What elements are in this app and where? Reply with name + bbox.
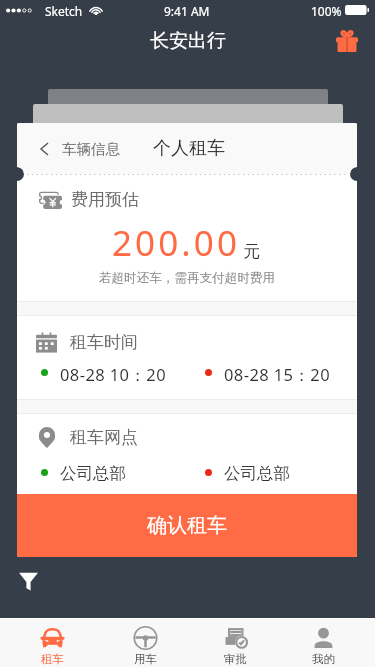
staticText: 9:41 AM: [164, 3, 210, 19]
staticText: 若超时还车，需再支付超时费用: [17, 270, 357, 286]
staticText: 200.00: [112, 219, 241, 267]
button[interactable]: 租车: [7, 619, 98, 667]
staticText: 租车网点: [70, 427, 138, 448]
staticText: 08-28 15：20: [224, 363, 331, 381]
staticText: 公司总部: [60, 463, 126, 481]
staticText: 租车时间: [70, 332, 138, 353]
staticText: Sketch: [45, 3, 83, 19]
staticText: 审批: [224, 652, 247, 666]
staticText: 08-28 10：20: [60, 363, 167, 381]
staticText: 用车: [134, 652, 157, 666]
staticText: 长安出行: [150, 29, 226, 53]
staticText: 确认租车: [147, 513, 227, 538]
staticText: 元: [243, 241, 260, 262]
button[interactable]: Back: [33, 138, 55, 160]
button[interactable]: Filter: [13, 566, 43, 596]
staticText: 100%: [311, 3, 342, 19]
staticText: 公司总部: [224, 463, 290, 481]
button[interactable]: 用车: [100, 619, 191, 667]
staticText: 费用预估: [71, 189, 139, 210]
staticText: 租车: [41, 652, 64, 666]
staticText: 个人租车: [153, 137, 225, 160]
button[interactable]: 审批: [190, 619, 281, 667]
button[interactable]: 我的: [278, 619, 369, 667]
button[interactable]: Gifts: [334, 28, 360, 54]
staticText: 车辆信息: [62, 140, 120, 158]
staticText: 我的: [312, 652, 335, 666]
button[interactable]: 确认租车: [17, 494, 357, 557]
